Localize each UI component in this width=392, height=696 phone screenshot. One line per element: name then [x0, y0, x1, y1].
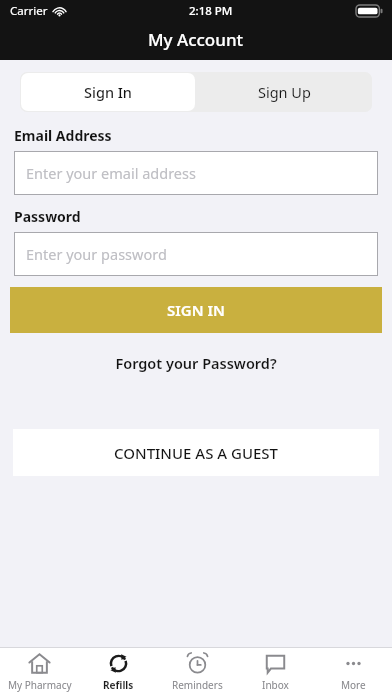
- button[interactable]: Enter your password: [14, 232, 378, 276]
- button[interactable]: Refills: [79, 648, 158, 696]
- staticText: Refills: [103, 678, 134, 692]
- staticText: Password: [14, 207, 81, 226]
- staticText: My Pharmacy: [8, 678, 72, 692]
- button[interactable]: Enter your email address: [14, 151, 378, 195]
- staticText: 2:18 PM: [189, 3, 233, 19]
- staticText: Enter your password: [26, 244, 167, 264]
- button[interactable]: Inbox: [236, 648, 314, 696]
- staticText: SIGN IN: [167, 300, 225, 320]
- staticText: Email Address: [14, 126, 112, 145]
- staticText: Enter your email address: [26, 163, 196, 183]
- button[interactable]: My Pharmacy: [0, 648, 79, 696]
- staticText: Inbox: [262, 678, 289, 692]
- button[interactable]: More: [314, 648, 392, 696]
- staticText: My Account: [148, 28, 244, 51]
- button[interactable]: Reminders: [158, 648, 236, 696]
- staticText: Sign In: [84, 82, 132, 102]
- staticText: More: [341, 678, 366, 692]
- staticText: Sign Up: [258, 82, 311, 102]
- button[interactable]: CONTINUE AS A GUEST: [13, 429, 379, 476]
- staticText: Reminders: [172, 678, 223, 692]
- button[interactable]: Sign In: [21, 73, 195, 111]
- button[interactable]: Sign Up: [196, 72, 372, 112]
- staticText: Carrier: [10, 3, 48, 19]
- button[interactable]: SIGN IN: [10, 287, 382, 333]
- button[interactable]: Forgot your Password?: [0, 349, 392, 377]
- staticText: CONTINUE AS A GUEST: [114, 443, 279, 463]
